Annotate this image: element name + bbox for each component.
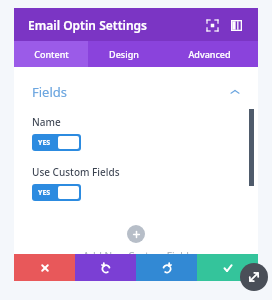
- staticText: Design: [109, 48, 139, 60]
- button[interactable]: Fields: [32, 81, 240, 103]
- button[interactable]: Undo: [75, 254, 136, 281]
- button[interactable]: Add New Custom Field: [32, 225, 240, 254]
- button[interactable]: Advanced: [160, 41, 258, 67]
- button[interactable]: YES: [32, 184, 81, 201]
- staticText: Fields: [32, 83, 68, 101]
- button[interactable]: Layout: [228, 17, 244, 33]
- button[interactable]: Expand: [204, 17, 220, 33]
- staticText: Name: [32, 115, 61, 129]
- button[interactable]: YES: [32, 134, 81, 151]
- button[interactable]: Design: [88, 41, 160, 67]
- staticText: YES: [38, 138, 51, 148]
- button[interactable]: Save: [197, 254, 258, 281]
- staticText: Add New Custom Field: [83, 249, 189, 254]
- staticText: Content: [34, 48, 69, 60]
- button[interactable]: Resize: [240, 263, 268, 291]
- button[interactable]: Content: [14, 41, 88, 67]
- staticText: Email Optin Settings: [28, 17, 147, 33]
- staticText: YES: [38, 188, 51, 198]
- staticText: Advanced: [188, 48, 231, 60]
- button[interactable]: Cancel: [14, 254, 75, 281]
- staticText: Use Custom Fields: [32, 165, 120, 179]
- button[interactable]: Redo: [136, 254, 197, 281]
